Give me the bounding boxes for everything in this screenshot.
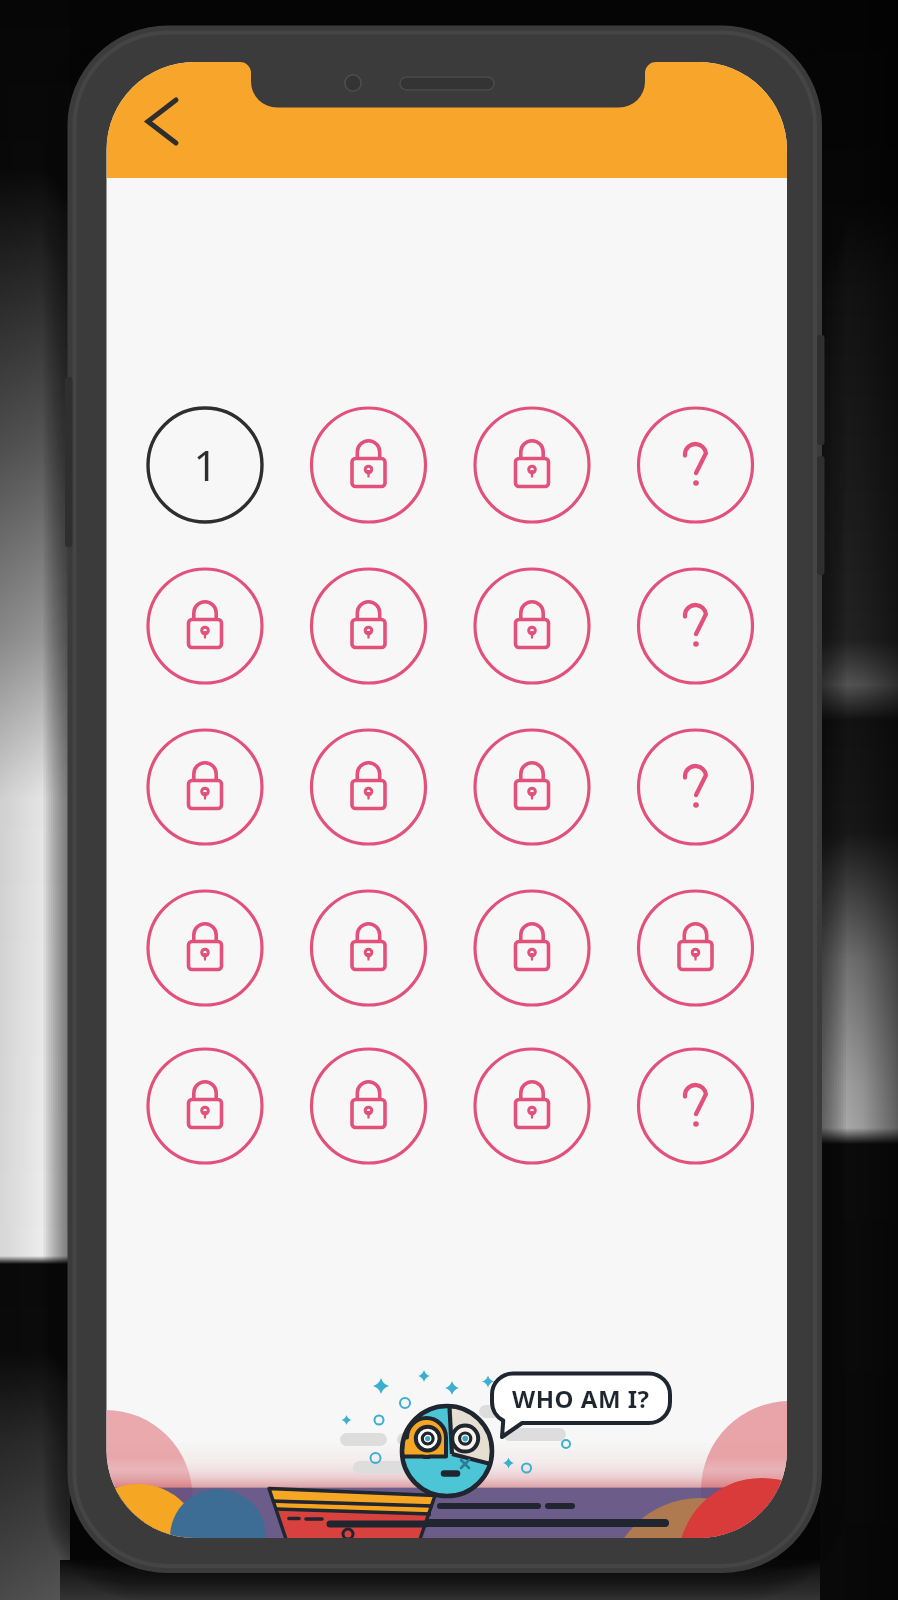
button[interactable]: 1: [148, 407, 262, 521]
staticText: WHO AM I?: [512, 1382, 650, 1415]
staticText: 1: [193, 436, 218, 493]
button[interactable]: Back: [130, 92, 196, 152]
